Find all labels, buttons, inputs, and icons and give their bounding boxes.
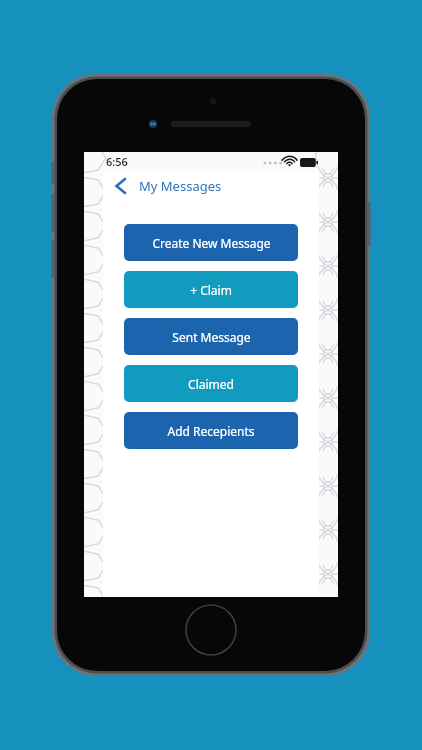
button[interactable]: Back [107,172,133,200]
staticText: 6:56 [106,154,128,169]
staticText: + Claim [190,282,232,298]
staticText: My Messages [139,177,222,195]
staticText: Claimed [188,376,234,392]
staticText: Sent Message [172,329,251,345]
button[interactable]: Create New Message [124,224,298,261]
button[interactable]: Claimed [124,365,298,402]
button[interactable]: + Claim [124,271,298,308]
button[interactable]: Sent Message [124,318,298,355]
staticText: Create New Message [152,235,271,251]
button[interactable]: Add Recepients [124,412,298,449]
staticText: Add Recepients [167,423,255,439]
